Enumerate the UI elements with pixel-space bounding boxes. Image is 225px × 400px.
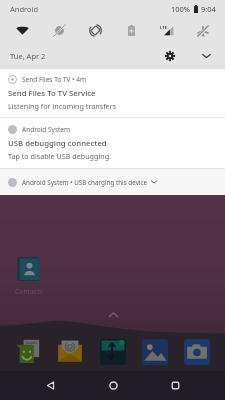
button[interactable]: Mobile signal LTE <box>149 18 185 43</box>
staticText: Listening for incoming transfers <box>8 101 117 111</box>
staticText: Android <box>10 4 39 14</box>
staticText: Tue, Apr 2 <box>10 51 46 61</box>
button[interactable]: Android System • USB charging this devic… <box>0 169 225 195</box>
button[interactable]: Settings <box>159 45 181 67</box>
staticText: Android System <box>22 125 71 134</box>
button[interactable]: Battery saver <box>113 18 149 43</box>
staticText: Send Files To TV • 4m <box>22 75 87 84</box>
button[interactable]: Contacts <box>6 256 51 296</box>
staticText: 100% <box>171 4 191 14</box>
button[interactable]: Recent apps <box>144 371 206 400</box>
button[interactable]: Email <box>57 339 83 365</box>
staticText: Tap to disable USB debugging. <box>8 151 112 161</box>
button[interactable]: Files <box>100 339 126 365</box>
button[interactable]: Auto-rotate <box>77 18 113 43</box>
staticText: USB debugging connected <box>8 138 107 149</box>
button[interactable]: Expand quick settings <box>195 45 217 67</box>
staticText: Contacts <box>15 287 43 296</box>
staticText: Send Files To TV Service <box>8 88 96 99</box>
button[interactable]: Back <box>19 371 82 400</box>
button[interactable]: Android System <box>0 118 225 168</box>
staticText: LTE <box>160 25 168 31</box>
staticText: 9:04 <box>201 4 216 14</box>
button[interactable]: Mobile data off <box>41 18 77 43</box>
button[interactable]: All apps <box>105 308 121 320</box>
button[interactable]: Messages <box>15 339 41 365</box>
button[interactable]: Wi-Fi <box>4 18 41 43</box>
button[interactable]: Airplane mode <box>185 18 221 43</box>
staticText: Android System • USB charging this devic… <box>22 178 148 187</box>
button[interactable]: Home <box>82 371 144 400</box>
button[interactable]: Gallery <box>142 339 168 365</box>
button[interactable]: Camera <box>184 339 210 365</box>
button[interactable]: Send Files To TV • 4m <box>0 69 225 117</box>
